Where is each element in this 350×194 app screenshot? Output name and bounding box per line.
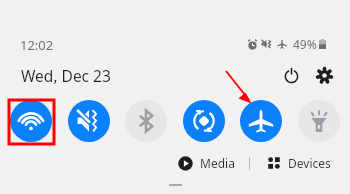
button[interactable]: Mute [68,100,110,142]
button[interactable]: Power [278,62,304,88]
button[interactable]: Auto rotate [183,100,225,142]
staticText: 49% [293,36,317,52]
button[interactable]: Bluetooth [125,100,167,142]
staticText: Devices [288,155,331,171]
staticText: 12:02 [20,36,54,54]
button[interactable]: Wi-Fi [10,100,52,142]
staticText: Media [200,155,235,171]
staticText: Wed, Dec 23 [21,65,111,86]
button[interactable]: Airplane mode [240,100,282,142]
button[interactable]: Media [178,155,235,171]
button[interactable]: Settings [311,62,337,88]
button[interactable]: Flashlight [298,100,340,142]
button[interactable]: Devices [268,155,331,171]
